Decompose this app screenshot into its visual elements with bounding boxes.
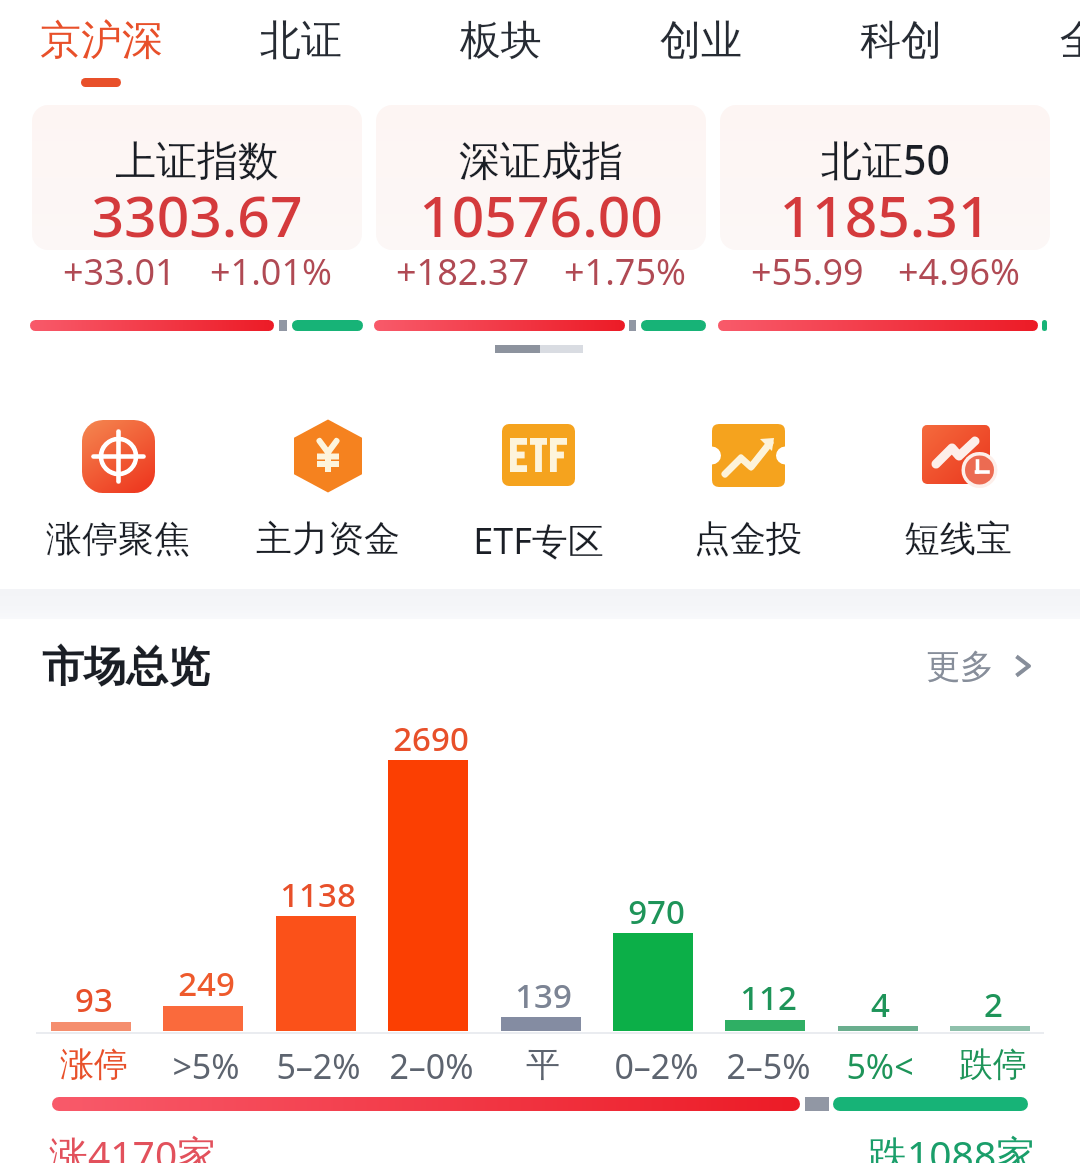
button[interactable]: 北证 [206, 0, 396, 92]
button[interactable]: 市场总览 [42, 641, 1038, 691]
staticText: 涨4170家 [49, 1127, 217, 1163]
staticText: 跌停 [959, 1043, 1027, 1086]
staticText: 2 [984, 982, 1003, 1027]
button[interactable]: 涨停聚焦 [13, 408, 223, 568]
staticText: 创业 [660, 15, 742, 67]
button[interactable]: ETF专区 [433, 408, 643, 568]
button[interactable]: 主力资金 [223, 408, 433, 568]
button[interactable] [32, 105, 362, 250]
staticText: 112 [740, 975, 797, 1020]
staticText: +182.37 [396, 247, 530, 296]
staticText: 北证50 [821, 131, 950, 187]
button[interactable]: 京沪深 [6, 0, 196, 92]
staticText: 2–0% [389, 1043, 474, 1089]
staticText: 京沪深 [40, 15, 163, 67]
staticText: 5%< [846, 1043, 914, 1089]
staticText: 全部 [1060, 15, 1080, 67]
staticText: 涨停聚焦 [46, 516, 190, 561]
staticText: 10576.00 [419, 176, 663, 254]
staticText: >5% [172, 1043, 240, 1089]
staticText: 板块 [460, 15, 542, 67]
button[interactable]: 全部 [1006, 0, 1080, 92]
staticText: 970 [628, 889, 685, 934]
button[interactable]: 科创 [806, 0, 996, 92]
button[interactable]: 创业 [606, 0, 796, 92]
staticText: 涨停 [60, 1043, 128, 1086]
staticText: 93 [75, 977, 113, 1022]
staticText: ETF专区 [473, 516, 604, 565]
staticText: 139 [515, 973, 572, 1018]
staticText: 上证指数 [115, 136, 279, 188]
staticText: 点金投 [694, 516, 802, 561]
button[interactable]: 点金投 [643, 408, 853, 568]
staticText: 跌1088家 [868, 1127, 1036, 1163]
staticText: 短线宝 [904, 516, 1012, 561]
button[interactable] [376, 105, 706, 250]
staticText: 平 [526, 1043, 560, 1086]
staticText: 市场总览 [42, 641, 210, 691]
staticText: 深证成指 [459, 136, 623, 188]
staticText: 5–2% [276, 1043, 361, 1089]
staticText: 科创 [860, 15, 942, 67]
staticText: +4.96% [898, 247, 1020, 296]
staticText: 1138 [280, 872, 356, 917]
button[interactable]: 板块 [406, 0, 596, 92]
staticText: 北证 [260, 15, 342, 67]
staticText: +1.01% [210, 247, 332, 296]
button[interactable]: 短线宝 [853, 408, 1063, 568]
staticText: 4 [871, 982, 890, 1027]
staticText: 2–5% [726, 1043, 811, 1089]
staticText: 更多 [926, 645, 994, 688]
staticText: 249 [178, 961, 235, 1006]
button[interactable] [720, 105, 1050, 250]
staticText: +33.01 [63, 247, 176, 296]
staticText: +1.75% [564, 247, 686, 296]
staticText: 2690 [393, 716, 469, 761]
staticText: +55.99 [751, 247, 864, 296]
staticText: 3303.67 [91, 176, 303, 254]
staticText: 1185.31 [779, 176, 991, 254]
staticText: 主力资金 [256, 516, 400, 561]
staticText: 0–2% [614, 1043, 699, 1089]
